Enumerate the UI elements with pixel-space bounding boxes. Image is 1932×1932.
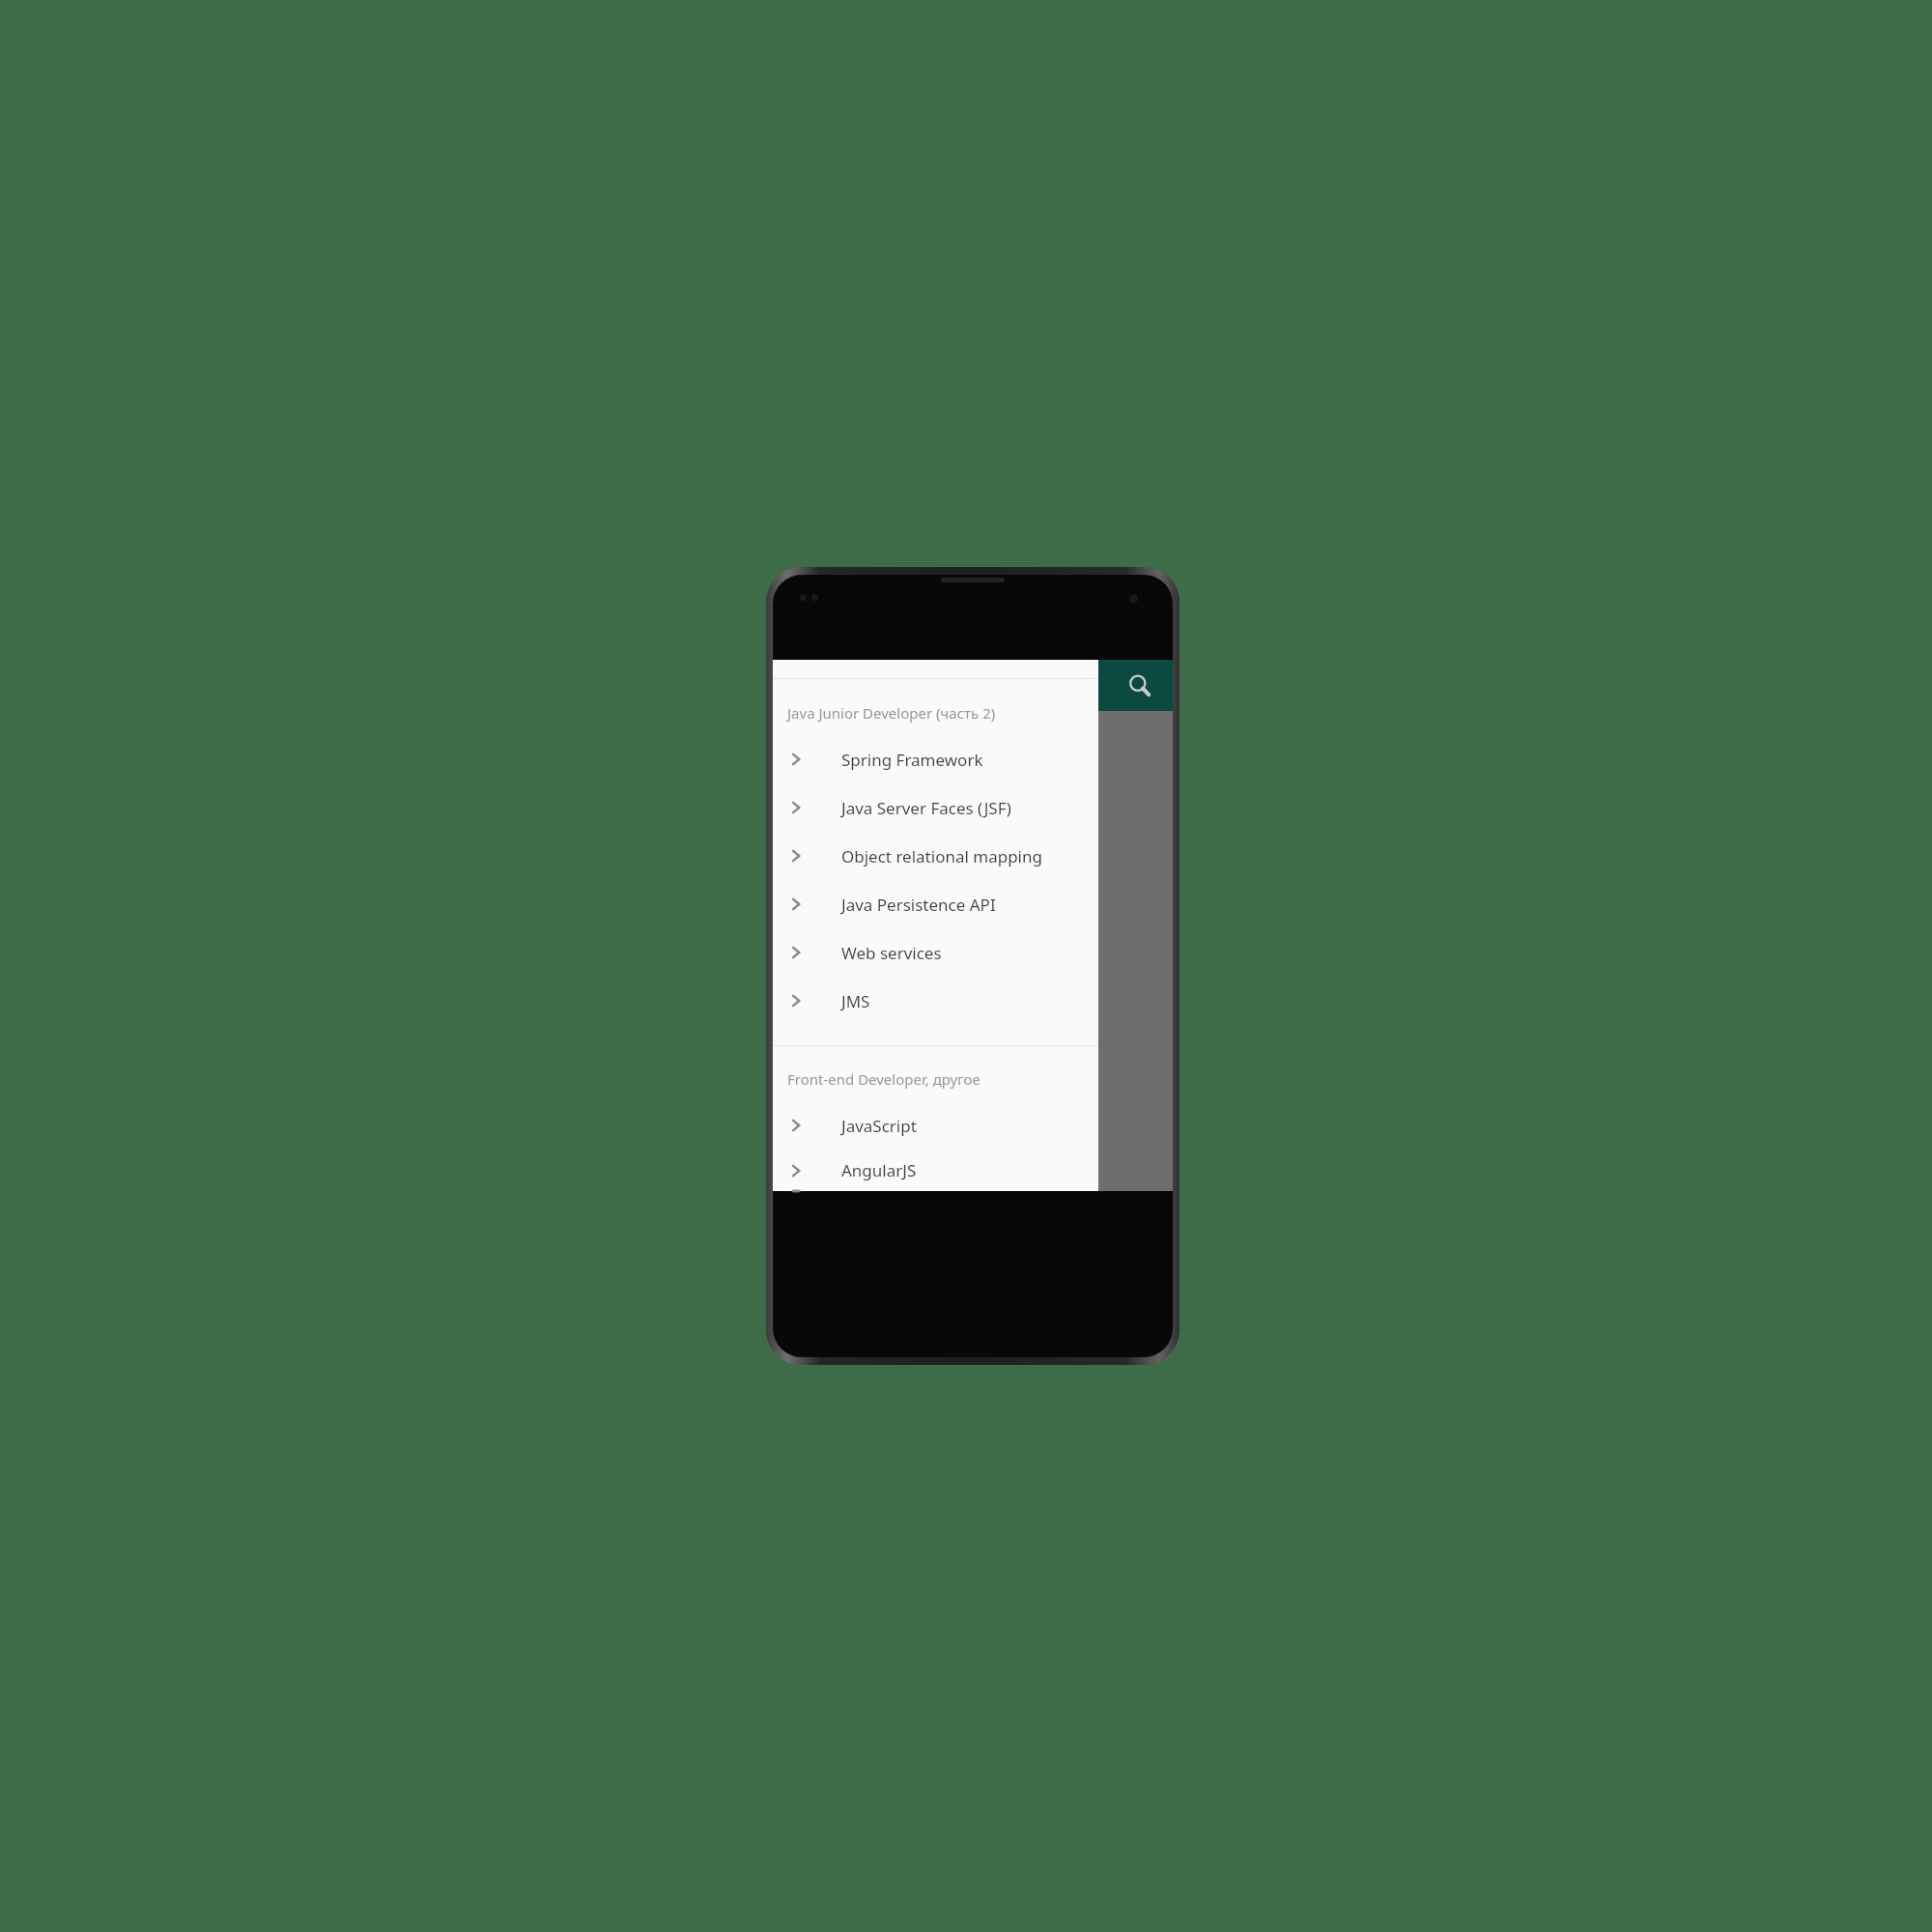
staticText: JavaScript: [841, 1115, 917, 1137]
button[interactable]: Java Persistence API: [773, 880, 1098, 928]
staticText: Java Junior Developer (часть 2): [787, 703, 996, 723]
button[interactable]: AngularJS: [773, 1150, 1098, 1191]
button[interactable]: JMS: [773, 977, 1098, 1025]
staticText: AngularJS: [841, 1159, 917, 1181]
staticText: е: [943, 896, 958, 930]
button[interactable]: Java Server Faces (JSF): [773, 783, 1098, 832]
button[interactable]: Object relational mapping: [773, 832, 1098, 880]
staticText: Java Server Faces (JSF): [841, 797, 1011, 819]
staticText: Front-end Developer, другое: [787, 1069, 980, 1089]
staticText: Web services: [841, 942, 942, 964]
staticText: Java Persistence API: [841, 894, 996, 916]
button[interactable]: Web services: [773, 928, 1098, 977]
button[interactable]: JavaScript: [773, 1101, 1098, 1150]
staticText: JMS: [841, 990, 870, 1012]
staticText: Object relational mapping: [841, 845, 1042, 867]
staticText: ты: [939, 955, 982, 999]
button[interactable]: Spring Framework: [773, 735, 1098, 783]
staticText: Spring Framework: [841, 749, 983, 771]
button[interactable]: Search: [1119, 665, 1161, 707]
